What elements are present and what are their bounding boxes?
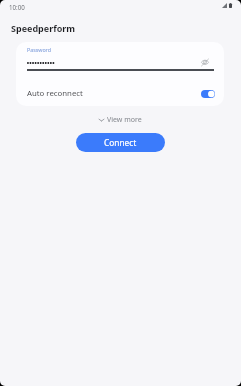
- staticText: Password: [27, 46, 51, 53]
- staticText: View more: [107, 115, 142, 125]
- staticText: 10:00: [9, 3, 25, 11]
- staticText: Speedperform: [11, 22, 76, 34]
- button[interactable]: View more: [97, 113, 144, 127]
- button[interactable]: Auto reconnect: [16, 72, 224, 106]
- staticText: Connect: [104, 137, 137, 148]
- button[interactable]: Hide password: [196, 55, 214, 69]
- button[interactable]: Connect: [76, 133, 165, 152]
- staticText: Auto reconnect: [27, 88, 83, 99]
